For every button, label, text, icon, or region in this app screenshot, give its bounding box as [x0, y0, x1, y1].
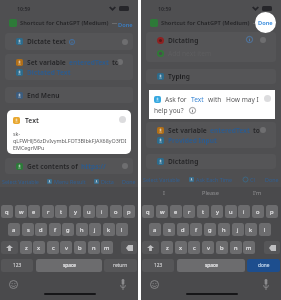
- button[interactable]: h: [76, 223, 88, 236]
- button[interactable]: Backspace: [264, 241, 280, 254]
- button[interactable]: k: [103, 223, 115, 236]
- button[interactable]: m: [243, 241, 255, 254]
- button[interactable]: space: [177, 259, 245, 272]
- button[interactable]: l: [259, 223, 271, 236]
- button[interactable]: Ask Each Time: [189, 176, 233, 183]
- staticText: c: [193, 244, 196, 252]
- staticText: with: [208, 95, 222, 104]
- button[interactable]: Ask for: [149, 90, 275, 119]
- button[interactable]: x: [33, 241, 45, 254]
- button[interactable]: s: [163, 223, 175, 236]
- button[interactable]: Done: [265, 176, 279, 183]
- button[interactable]: n: [230, 241, 242, 254]
- button[interactable]: c: [188, 241, 200, 254]
- button[interactable]: Dictation: [263, 279, 269, 290]
- button[interactable]: t: [197, 205, 209, 218]
- button[interactable]: i: [238, 205, 250, 218]
- button[interactable]: Please: [187, 187, 234, 198]
- button[interactable]: Dictation: [120, 279, 126, 290]
- button[interactable]: u: [83, 205, 95, 218]
- button[interactable]: a: [149, 223, 161, 236]
- button[interactable]: m: [101, 241, 113, 254]
- button[interactable]: Set variable: [146, 122, 276, 148]
- button[interactable]: 123: [142, 259, 174, 272]
- button[interactable]: r: [42, 205, 54, 218]
- button[interactable]: o: [110, 205, 122, 218]
- button[interactable]: o: [252, 205, 264, 218]
- button[interactable]: Emoji keyboard: [9, 280, 18, 289]
- button[interactable]: Select Variable: [2, 178, 39, 185]
- button[interactable]: k: [245, 223, 257, 236]
- button[interactable]: End Menu: [5, 87, 133, 103]
- staticText: enteredText: [69, 58, 109, 67]
- button[interactable]: y: [69, 205, 81, 218]
- button[interactable]: b: [216, 241, 228, 254]
- button[interactable]: space: [36, 259, 102, 272]
- button[interactable]: p: [123, 205, 135, 218]
- button[interactable]: c: [47, 241, 59, 254]
- button[interactable]: Done: [255, 12, 276, 33]
- button[interactable]: Select Variable: [143, 176, 180, 183]
- button[interactable]: Done: [122, 178, 136, 185]
- button[interactable]: Menu Result: [47, 178, 86, 185]
- button[interactable]: q: [142, 205, 154, 218]
- button[interactable]: h: [218, 223, 230, 236]
- button[interactable]: z: [20, 241, 32, 254]
- button[interactable]: Text: [7, 110, 131, 154]
- staticText: 123: [154, 262, 163, 269]
- button[interactable]: I'm: [234, 187, 281, 198]
- button[interactable]: f: [49, 223, 61, 236]
- button[interactable]: l: [116, 223, 128, 236]
- staticText: i: [243, 208, 245, 216]
- button[interactable]: d: [35, 223, 47, 236]
- button[interactable]: j: [89, 223, 101, 236]
- button[interactable]: q: [1, 205, 13, 218]
- button[interactable]: Dicta: [94, 178, 114, 185]
- button[interactable]: done: [247, 259, 280, 272]
- button[interactable]: Get contents of: [5, 158, 133, 174]
- staticText: b: [220, 244, 224, 252]
- button[interactable]: e: [170, 205, 182, 218]
- button[interactable]: u: [225, 205, 237, 218]
- button[interactable]: Backspace: [121, 241, 137, 254]
- button[interactable]: Shift: [142, 241, 159, 254]
- button[interactable]: x: [175, 241, 187, 254]
- button[interactable]: Dictate text: [5, 33, 133, 50]
- button[interactable]: w: [15, 205, 27, 218]
- button[interactable]: i: [96, 205, 108, 218]
- button[interactable]: v: [202, 241, 214, 254]
- button[interactable]: d: [177, 223, 189, 236]
- button[interactable]: Dictating: [146, 154, 276, 169]
- button[interactable]: y: [211, 205, 223, 218]
- button[interactable]: r: [183, 205, 195, 218]
- staticText: n: [234, 244, 238, 252]
- button[interactable]: Done: [117, 20, 134, 30]
- button[interactable]: z: [161, 241, 173, 254]
- button[interactable]: v: [60, 241, 72, 254]
- button[interactable]: Shift: [1, 241, 18, 254]
- button[interactable]: n: [88, 241, 100, 254]
- button[interactable]: s: [22, 223, 34, 236]
- staticText: y: [216, 208, 219, 216]
- button[interactable]: p: [266, 205, 278, 218]
- button[interactable]: Cl: [243, 176, 255, 183]
- button[interactable]: j: [232, 223, 244, 236]
- button[interactable]: Set variable: [5, 54, 133, 80]
- button[interactable]: Typing: [146, 69, 276, 84]
- button[interactable]: return: [104, 259, 137, 272]
- button[interactable]: 123: [1, 259, 33, 272]
- button[interactable]: g: [204, 223, 216, 236]
- button[interactable]: Emoji keyboard: [150, 280, 159, 289]
- button[interactable]: w: [156, 205, 168, 218]
- button[interactable]: g: [62, 223, 74, 236]
- button[interactable]: a: [8, 223, 20, 236]
- staticText: 10:59: [158, 5, 172, 12]
- staticText: w: [160, 208, 165, 216]
- button[interactable]: I: [141, 187, 187, 198]
- button[interactable]: t: [55, 205, 67, 218]
- button[interactable]: f: [190, 223, 202, 236]
- button[interactable]: b: [74, 241, 86, 254]
- button[interactable]: Dictating: [146, 32, 276, 62]
- button[interactable]: e: [28, 205, 40, 218]
